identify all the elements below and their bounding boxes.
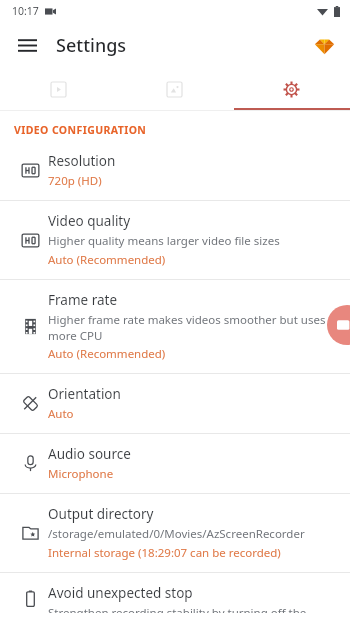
staticText: Audio source xyxy=(48,445,131,463)
staticText: Video quality xyxy=(48,212,131,230)
staticText: Avoid unexpected stop xyxy=(48,584,193,602)
button[interactable]: Settings tab xyxy=(233,68,350,110)
staticText: Resolution xyxy=(48,152,116,170)
button[interactable]: Avoid unexpected stop xyxy=(0,573,350,624)
staticText: Auto (Recommended) xyxy=(48,346,166,362)
staticText: Microphone xyxy=(48,466,114,482)
button[interactable]: Video quality xyxy=(0,201,350,279)
staticText: Orientation xyxy=(48,385,121,403)
button[interactable]: Audio source xyxy=(0,434,350,493)
button[interactable]: App logo xyxy=(306,27,342,63)
staticText: 720p (HD) xyxy=(48,173,102,189)
staticText: Output directory xyxy=(48,505,154,523)
staticText: Internal storage (18:29:07 can be record… xyxy=(48,545,281,561)
staticText: Higher frame rate makes videos smoother … xyxy=(48,312,336,343)
staticText: /storage/emulated/0/Movies/AzScreenRecor… xyxy=(48,526,305,542)
button[interactable]: Output directory xyxy=(0,494,350,572)
staticText: Strengthen recording stability by turnin… xyxy=(48,605,336,613)
staticText: Auto (Recommended) xyxy=(48,252,166,268)
staticText: Auto xyxy=(48,406,74,422)
button[interactable]: Orientation xyxy=(0,374,350,433)
staticText: 10:17 xyxy=(12,4,39,18)
staticText: VIDEO CONFIGURATION xyxy=(14,123,147,137)
button[interactable]: Record video xyxy=(327,305,350,345)
staticText: Frame rate xyxy=(48,291,117,309)
staticText: Settings xyxy=(56,33,127,58)
button[interactable]: Frame rate xyxy=(0,280,350,373)
button[interactable]: Resolution xyxy=(0,141,350,200)
button[interactable]: Open navigation menu xyxy=(8,26,46,64)
staticText: Higher quality means larger video file s… xyxy=(48,233,280,249)
